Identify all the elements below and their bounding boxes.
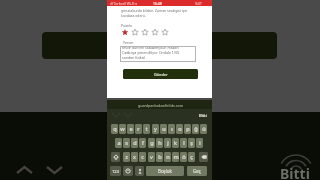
button[interactable]: Rate 2 stars (131, 28, 139, 36)
button[interactable]: t (143, 124, 150, 134)
button[interactable]: h (156, 138, 163, 148)
staticText: ginsstaburda bilakin. Zaman sevdigini iç… (121, 8, 188, 18)
button[interactable]: g (148, 138, 155, 148)
button[interactable]: Emoji (123, 166, 133, 176)
staticText: %47 (195, 1, 202, 6)
staticText: i (199, 139, 201, 147)
button[interactable]: c (139, 152, 146, 162)
button[interactable]: Geç (187, 166, 207, 176)
button[interactable]: ö (180, 152, 187, 162)
button[interactable]: Next (46, 166, 63, 174)
staticText: h (158, 139, 162, 147)
button[interactable]: n (164, 152, 171, 162)
button[interactable]: Previous (16, 166, 33, 174)
button[interactable]: d (131, 138, 138, 148)
button[interactable]: q (111, 124, 118, 134)
staticText: ö (182, 153, 186, 161)
staticText: x (133, 153, 136, 161)
staticText: ı (171, 125, 173, 133)
button[interactable]: f (139, 138, 146, 148)
staticText: Geç (193, 168, 201, 174)
button[interactable]: Rate 3 stars (141, 28, 149, 36)
staticText: v (150, 153, 153, 161)
button[interactable]: ı (168, 124, 175, 134)
staticText: Boşluk (158, 168, 172, 174)
button[interactable]: o (176, 124, 183, 134)
button[interactable]: e (127, 124, 134, 134)
staticText: r (137, 125, 140, 133)
staticText: ıll Turkcell Wi-Fi ▾ (110, 1, 138, 6)
staticText: ğ (194, 125, 198, 133)
staticText: e (129, 125, 133, 133)
button[interactable]: r (135, 124, 142, 134)
staticText: Bitti (199, 113, 207, 119)
staticText: g (150, 139, 154, 147)
staticText: t (145, 125, 148, 133)
staticText: u (162, 125, 166, 133)
button[interactable]: Rate 1 stars (121, 28, 129, 36)
button[interactable]: Rate 5 stars (161, 28, 169, 36)
staticText: y (154, 125, 157, 133)
staticText: ü (202, 125, 206, 133)
button[interactable]: ğ (192, 124, 199, 134)
staticText: Yorum (123, 40, 134, 45)
button[interactable]: b (156, 152, 163, 162)
staticText: s (125, 139, 128, 147)
staticText: z (125, 153, 128, 161)
staticText: q (113, 125, 117, 133)
staticText: d (133, 139, 137, 147)
staticText: k (174, 139, 177, 147)
button[interactable]: y (152, 124, 159, 134)
button[interactable]: 123 (110, 166, 121, 176)
staticText: n (166, 153, 170, 161)
staticText: ç (190, 153, 193, 161)
button[interactable]: m (172, 152, 179, 162)
staticText: j (167, 139, 169, 147)
button[interactable]: v (148, 152, 155, 162)
button[interactable]: p (184, 124, 191, 134)
staticText: guardpanbakanfirildo.com (138, 103, 184, 108)
button[interactable]: ş (188, 138, 195, 148)
button[interactable]: Boşluk (146, 166, 184, 176)
staticText: Gönder (154, 72, 168, 77)
staticText: 123 (112, 169, 119, 174)
staticText: a (117, 139, 121, 147)
staticText: l (183, 139, 185, 147)
staticText: Puanla (121, 23, 132, 28)
staticText: p (186, 125, 190, 133)
staticText: c (141, 153, 144, 161)
button[interactable]: k (172, 138, 179, 148)
staticText: tesvir duhtrin sababmyoun makan Cadboya … (122, 45, 180, 60)
staticText: b (158, 153, 162, 161)
button[interactable]: ü (200, 124, 207, 134)
button[interactable]:  (107, 100, 212, 110)
button[interactable]: Voice input (135, 166, 144, 176)
staticText: w (120, 125, 125, 133)
button[interactable]: x (131, 152, 138, 162)
staticText: f (142, 139, 144, 147)
button[interactable]: s (123, 138, 130, 148)
button[interactable]: ç (188, 152, 195, 162)
staticText: m (173, 153, 179, 161)
button[interactable]: z (123, 152, 130, 162)
button[interactable]: j (164, 138, 171, 148)
button[interactable]: l (180, 138, 187, 148)
button[interactable]: Rate 4 stars (151, 28, 159, 36)
button[interactable]: a (115, 138, 122, 148)
button[interactable]: Gönder (123, 69, 198, 79)
button[interactable]: Shift (111, 152, 120, 162)
staticText: ş (190, 139, 193, 147)
button[interactable]: u (160, 124, 167, 134)
button[interactable]: Bitti (196, 112, 209, 119)
button[interactable]: i (196, 138, 203, 148)
staticText: 16:48 (153, 1, 162, 6)
staticText: o (178, 125, 182, 133)
button[interactable]: w (119, 124, 126, 134)
button[interactable]: tesvir duhtrin sababmyoun makan Cadboya … (120, 46, 196, 62)
button[interactable]: Backspace (199, 152, 208, 162)
staticText: Bitti (280, 164, 310, 180)
